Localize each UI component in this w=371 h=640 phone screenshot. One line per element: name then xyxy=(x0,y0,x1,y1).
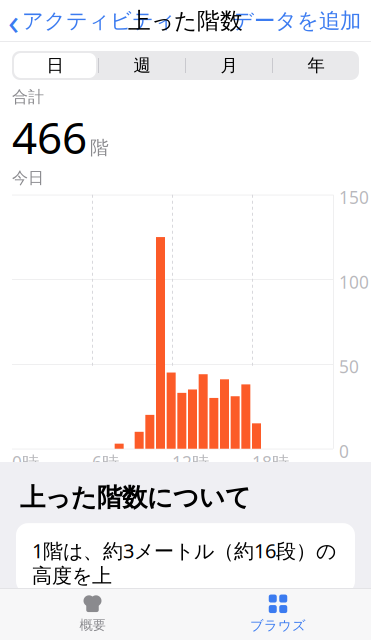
button[interactable]: ‹ xyxy=(0,0,176,49)
staticText: 6時 xyxy=(92,451,119,474)
staticText: 概要 xyxy=(79,617,105,633)
staticText: 階 xyxy=(90,136,109,159)
staticText: ‹ xyxy=(8,0,19,45)
button[interactable]: 概要 xyxy=(0,589,185,638)
staticText: ブラウズ xyxy=(250,617,306,634)
staticText: 50 xyxy=(339,355,359,378)
button[interactable]: データを追加 xyxy=(232,4,371,38)
staticText: 100 xyxy=(339,270,369,293)
staticText: 150 xyxy=(339,186,369,209)
button[interactable]: 月 xyxy=(186,51,272,80)
staticText: 月 xyxy=(220,55,237,76)
staticText: 上った階数について xyxy=(20,482,251,513)
staticText: 合計 xyxy=(12,87,44,107)
staticText: 年 xyxy=(307,55,324,76)
staticText: 日 xyxy=(46,55,63,76)
button[interactable]: 週 xyxy=(99,51,185,80)
staticText: 昇したと見なされます。 xyxy=(32,591,252,616)
button[interactable]: 日 xyxy=(12,51,98,80)
staticText: 今日 xyxy=(12,168,44,188)
button[interactable]: 年 xyxy=(273,51,359,80)
staticText: 12時 xyxy=(172,451,209,474)
button[interactable]: ブラウズ xyxy=(185,589,371,638)
staticText: データを追加 xyxy=(232,8,361,34)
staticText: アクティビティ xyxy=(22,8,176,34)
staticText: 0時 xyxy=(12,451,39,474)
staticText: 0 xyxy=(339,440,349,463)
staticText: 週 xyxy=(133,55,150,76)
staticText: 1階は、約3メートル（約16段）の高度を上 xyxy=(32,537,336,588)
staticText: 上った階数 xyxy=(128,7,243,35)
staticText: 18時 xyxy=(252,451,289,474)
staticText: 466 xyxy=(12,108,87,166)
